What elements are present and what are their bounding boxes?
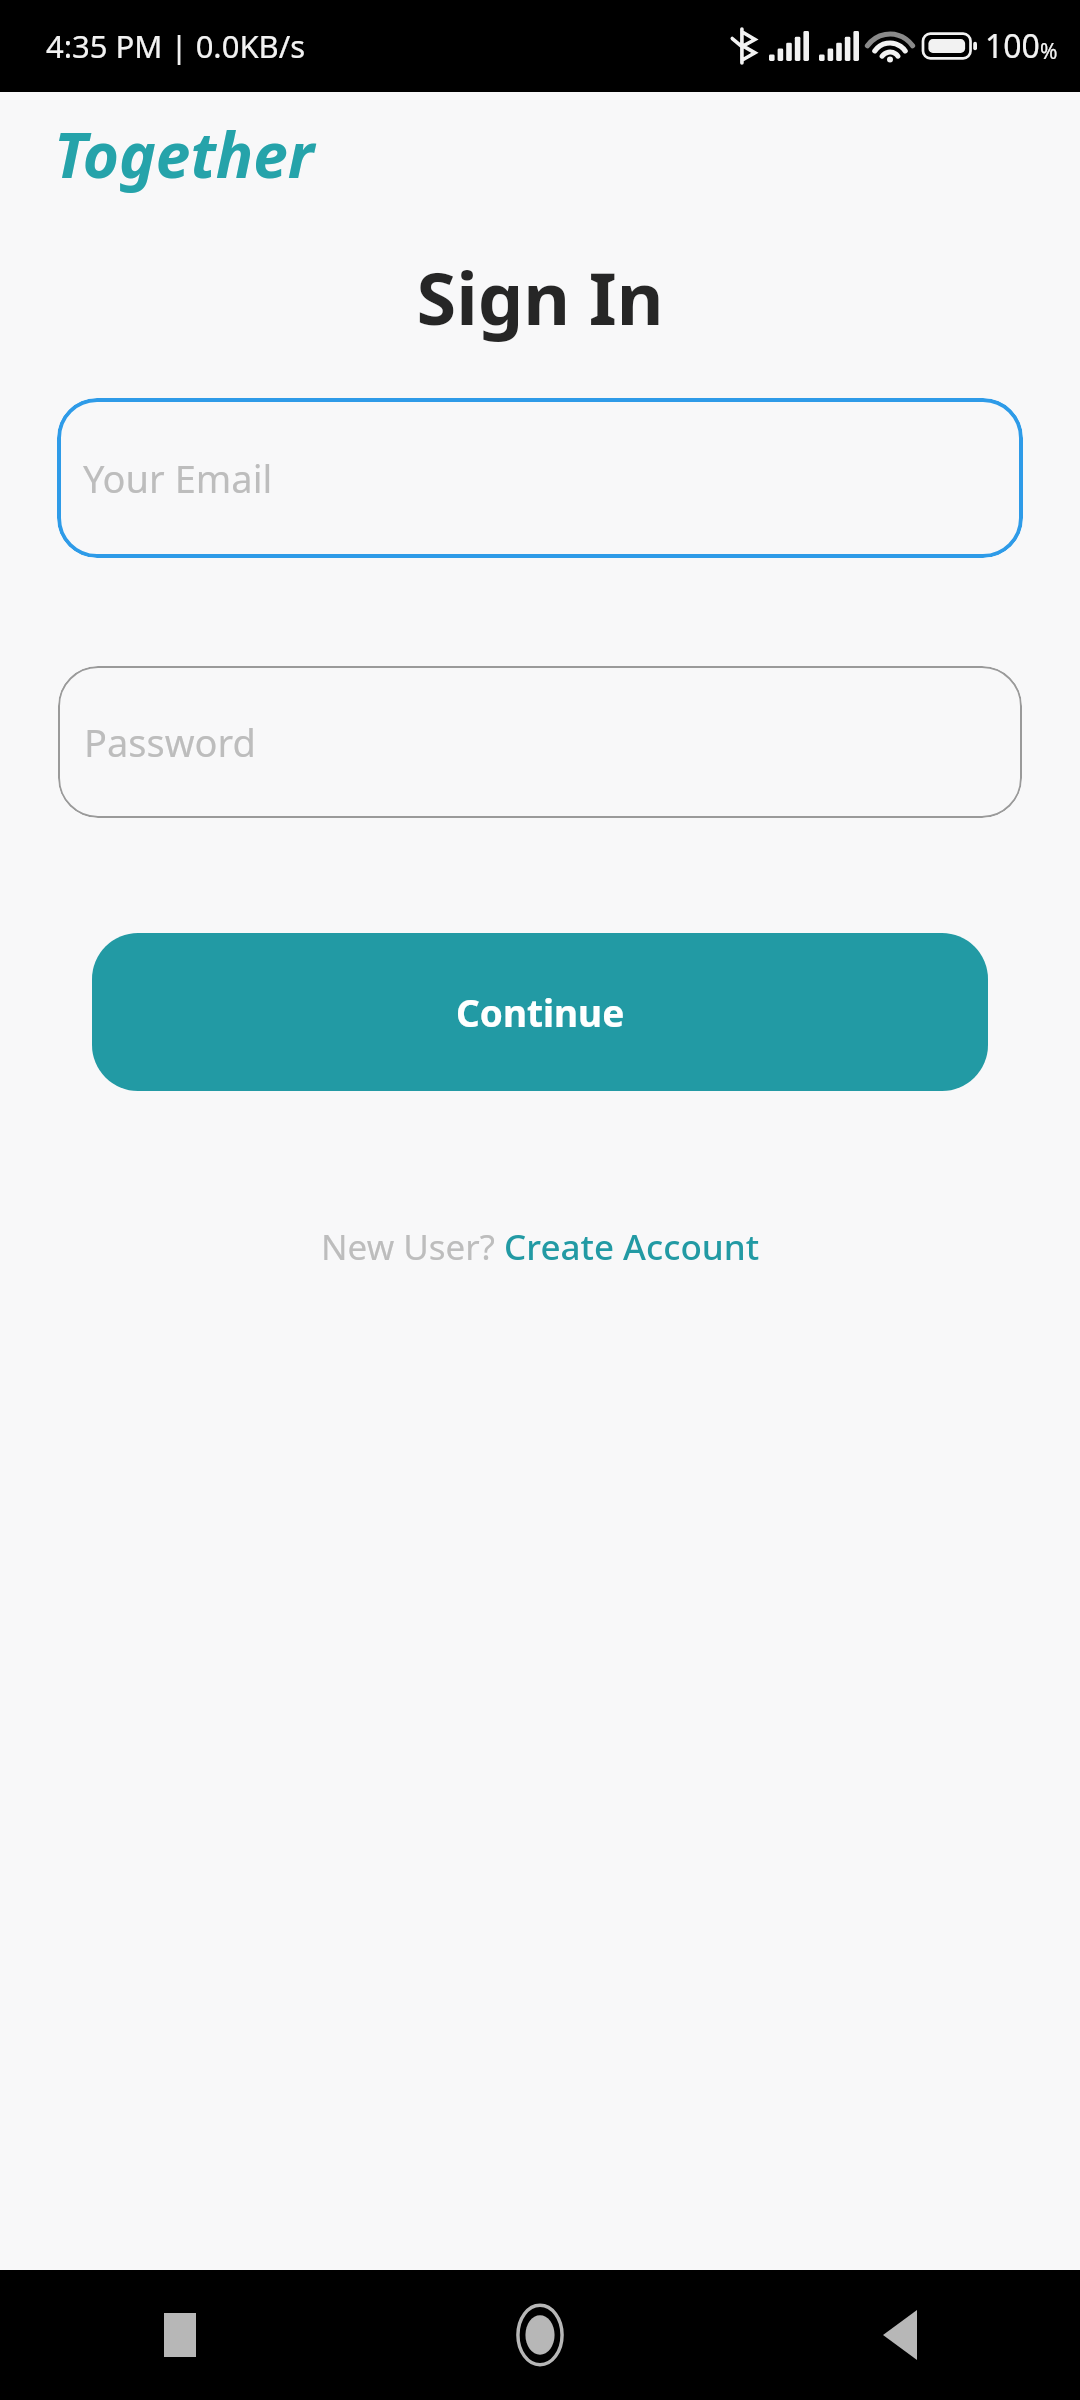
- button[interactable]: New User? Create Account: [311, 1217, 770, 1277]
- staticText: Password: [84, 716, 256, 768]
- button[interactable]: Recent apps: [0, 2270, 360, 2400]
- staticText: Sign In: [0, 248, 1080, 346]
- staticText: 4:35 PM | 0.0KB/s: [46, 25, 306, 67]
- button[interactable]: Home: [360, 2270, 720, 2400]
- staticText: 100: [985, 24, 1040, 68]
- button[interactable]: Continue: [92, 933, 988, 1091]
- staticText: New User? Create Account: [321, 1223, 760, 1271]
- button[interactable]: Your Email input field: [57, 398, 1023, 558]
- button[interactable]: Password input field: [58, 666, 1022, 818]
- button[interactable]: Back: [720, 2270, 1080, 2400]
- staticText: Continue: [456, 987, 625, 1037]
- staticText: Your Email: [83, 452, 273, 504]
- staticText: %: [1040, 37, 1058, 66]
- staticText: Together: [54, 112, 314, 196]
